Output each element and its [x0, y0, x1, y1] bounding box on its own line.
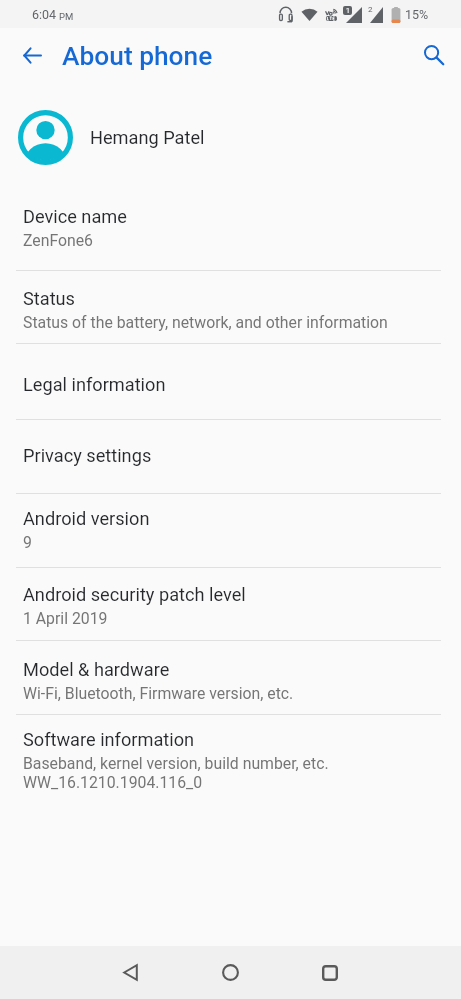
button[interactable]: Search [414, 35, 454, 75]
staticText: Android version [23, 508, 150, 529]
button[interactable]: Status [0, 271, 461, 344]
staticText: Privacy settings [23, 445, 152, 466]
button[interactable]: Legal information [0, 344, 461, 420]
staticText: Hemang Patel [90, 127, 205, 148]
staticText: 1 April 2019 [23, 609, 108, 628]
staticText: Legal information [23, 374, 166, 395]
staticText: 1 [346, 7, 350, 15]
button[interactable]: Back [12, 35, 52, 75]
button[interactable]: Android version [0, 494, 461, 568]
button[interactable]: Device name [0, 190, 461, 271]
button[interactable]: Software information [0, 715, 461, 795]
button[interactable]: Privacy settings [0, 420, 461, 494]
button[interactable]: Back [102, 946, 158, 999]
staticText: Status of the battery, network, and othe… [23, 313, 388, 332]
staticText: Wi-Fi, Bluetooth, Firmware version, etc. [23, 684, 294, 703]
button[interactable]: Home [202, 946, 258, 999]
button[interactable]: Recent apps [302, 946, 358, 999]
staticText: Device name [23, 206, 127, 227]
staticText: ZenFone6 [23, 231, 93, 250]
staticText: Android security patch level [23, 584, 246, 605]
staticText: Software information [23, 729, 195, 750]
staticText: About phone [62, 41, 213, 72]
staticText: 6:04 [32, 7, 57, 22]
staticText: 2 [368, 5, 373, 14]
staticText: Model & hardware [23, 659, 170, 680]
staticText: WW_16.1210.1904.116_0 [23, 773, 203, 792]
staticText: Baseband, kernel version, build number, … [23, 754, 329, 773]
staticText: Status [23, 288, 76, 309]
button[interactable]: Android security patch level [0, 568, 461, 641]
staticText: 15% [405, 7, 429, 22]
staticText: PM [59, 11, 74, 22]
staticText: 9 [23, 533, 32, 552]
button[interactable]: Model & hardware [0, 641, 461, 715]
button[interactable]: Hemang Patel [0, 84, 461, 190]
